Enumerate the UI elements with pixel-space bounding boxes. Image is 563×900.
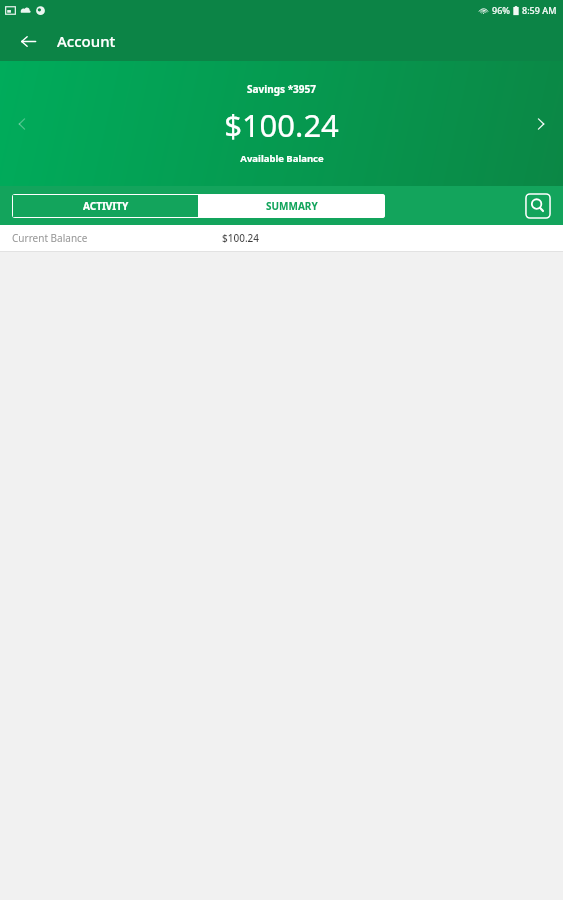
staticText: $100.24 bbox=[224, 104, 339, 146]
staticText: ACTIVITY bbox=[83, 199, 129, 213]
button[interactable]: Previous account bbox=[4, 106, 40, 142]
staticText: Current Balance bbox=[12, 231, 88, 245]
button[interactable]: Search bbox=[524, 192, 552, 220]
staticText: Savings *3957 bbox=[247, 82, 316, 96]
staticText: SUMMARY bbox=[266, 199, 318, 213]
button[interactable]: ACTIVITY bbox=[13, 195, 198, 217]
button[interactable]: Back bbox=[12, 25, 44, 57]
button[interactable]: SUMMARY bbox=[199, 194, 385, 218]
staticText: Account bbox=[57, 31, 116, 51]
button[interactable]: Next account bbox=[523, 106, 559, 142]
button[interactable]: Current Balance bbox=[0, 225, 563, 251]
staticText: $100.24 bbox=[222, 231, 260, 245]
staticText: Available Balance bbox=[240, 152, 324, 165]
staticText: 8:59 AM bbox=[522, 4, 557, 16]
staticText: 96% bbox=[492, 4, 510, 16]
